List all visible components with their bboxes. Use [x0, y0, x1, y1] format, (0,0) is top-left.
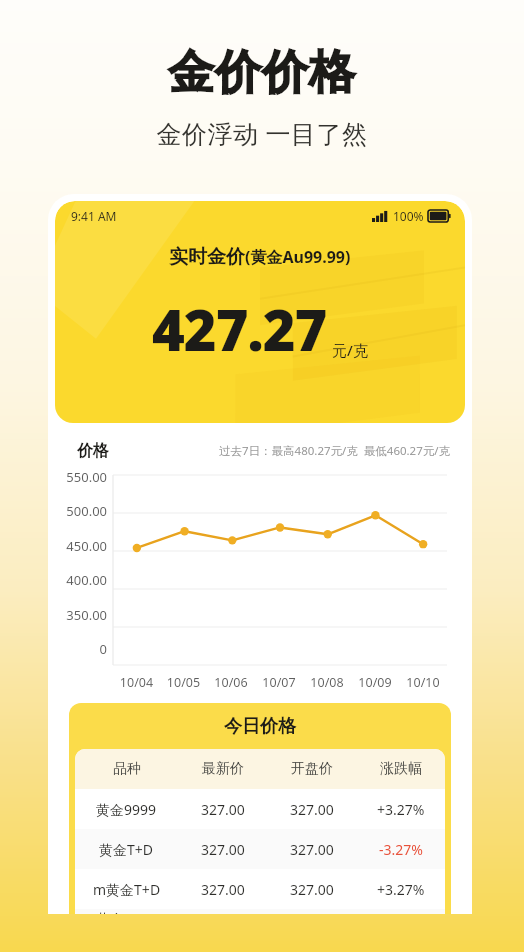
staticText: 10/05 [160, 674, 207, 691]
staticText: 品种 [113, 760, 141, 778]
staticText: 黄金T+D [99, 840, 154, 859]
staticText: 327.00 [290, 800, 334, 819]
staticText: 327.00 [290, 840, 334, 859]
staticText: 过去7日：最高480.27元/克 最低460.27元/克 [219, 443, 451, 459]
staticText: 开盘价 [291, 760, 333, 778]
staticText: 今日价格 [224, 715, 296, 738]
staticText: (黄金Au99.99) [245, 246, 351, 268]
staticText: 元/克 [332, 340, 368, 360]
staticText: 0 [59, 640, 107, 658]
staticText: 9:41 AM [71, 208, 117, 224]
staticText: 327.00 [201, 800, 245, 819]
staticText: 327.00 [201, 880, 245, 899]
staticText: 350.00 [59, 606, 107, 624]
staticText: 427.27 [152, 291, 327, 367]
staticText: +3.27% [377, 800, 425, 819]
staticText: 10/06 [207, 674, 255, 691]
staticText: 10/04 [113, 674, 160, 691]
staticText: 价格 [77, 441, 109, 461]
staticText: 10/09 [351, 674, 399, 691]
staticText: 327.00 [201, 840, 245, 859]
staticText: 10/07 [255, 674, 303, 691]
staticText: -3.27% [379, 840, 423, 859]
staticText: 10/08 [303, 674, 351, 691]
button[interactable]: 黄金9999 [75, 789, 445, 829]
staticText: 金价价格 [0, 44, 524, 102]
button[interactable]: 黄金9995 [75, 909, 445, 914]
staticText: 最新价 [202, 760, 244, 778]
button[interactable]: 黄金T+D [75, 829, 445, 869]
button[interactable]: 品种 [75, 749, 445, 789]
staticText: 实时金价 [169, 245, 245, 269]
staticText: 黄金9995 [96, 909, 157, 914]
staticText: 400.00 [59, 571, 107, 589]
staticText: 金价浮动 一目了然 [0, 116, 524, 150]
staticText: 450.00 [59, 537, 107, 555]
staticText: 500.00 [59, 502, 107, 520]
staticText: 黄金9999 [96, 800, 157, 819]
staticText: 涨跌幅 [380, 760, 422, 778]
staticText: 10/10 [399, 674, 447, 691]
button[interactable]: m黄金T+D [75, 869, 445, 909]
staticText: 550.00 [59, 468, 107, 486]
staticText: +3.27% [377, 880, 425, 899]
staticText: 327.00 [290, 880, 334, 899]
staticText: 100% [393, 208, 424, 224]
staticText: m黄金T+D [93, 880, 161, 899]
